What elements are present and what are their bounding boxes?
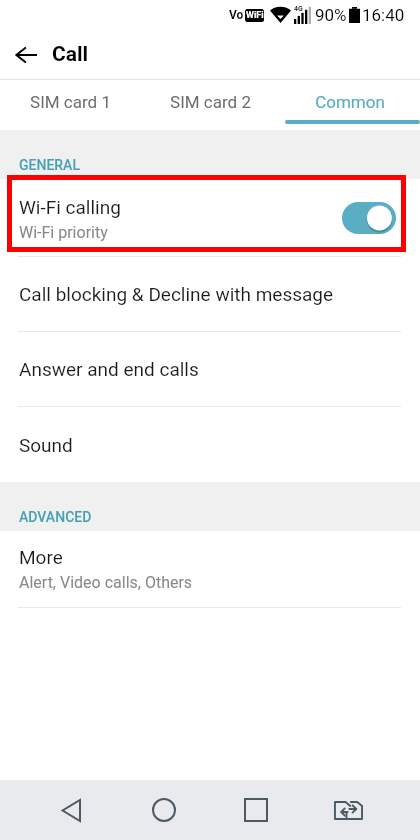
staticText: Call blocking & Decline with message <box>19 283 334 305</box>
staticText: GENERAL <box>19 157 80 173</box>
staticText: Sound <box>19 434 73 456</box>
button[interactable]: Wi-Fi calling <box>0 179 420 256</box>
button[interactable]: More <box>0 531 420 607</box>
staticText: More <box>19 546 63 568</box>
staticText: Wi-Fi calling <box>19 196 121 218</box>
button[interactable]: SIM card 1 <box>0 80 140 130</box>
button[interactable]: Sound <box>0 407 420 482</box>
button[interactable]: Answer and end calls <box>0 332 420 406</box>
staticText: SIM card 2 <box>170 92 251 112</box>
button[interactable]: Split screen <box>326 780 370 840</box>
button[interactable]: Recents <box>186 780 326 840</box>
staticText: Wi-Fi priority <box>19 223 108 242</box>
button[interactable]: Call blocking & Decline with message <box>0 257 420 331</box>
staticText: 4G <box>294 5 303 13</box>
staticText: SIM card 1 <box>30 92 111 112</box>
staticText: 90% <box>315 5 347 25</box>
staticText: 16:40 <box>362 5 405 25</box>
staticText: Vo <box>229 8 244 22</box>
staticText: WiFi <box>246 10 264 21</box>
button[interactable]: SIM card 2 <box>140 80 280 130</box>
button[interactable]: Wi-Fi calling toggle <box>342 202 396 234</box>
staticText: Answer and end calls <box>19 358 199 380</box>
staticText: Call <box>52 42 89 67</box>
button[interactable]: Back <box>0 780 142 840</box>
staticText: Alert, Video calls, Others <box>19 573 193 592</box>
button[interactable]: Back <box>0 30 52 79</box>
button[interactable]: Common <box>280 80 420 130</box>
staticText: Common <box>315 92 385 112</box>
staticText: ADVANCED <box>19 509 92 525</box>
button[interactable]: Home <box>142 780 186 840</box>
